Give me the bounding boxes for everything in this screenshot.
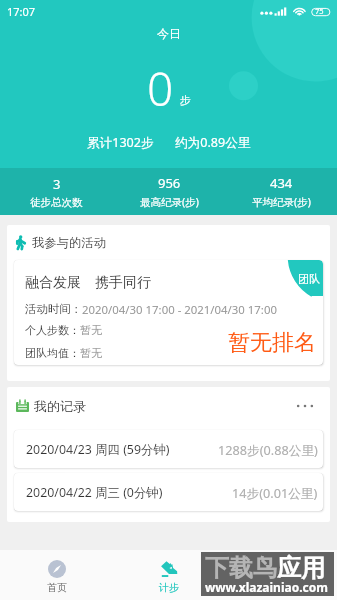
staticText: 团队: [298, 272, 320, 286]
staticText: 2020/04/30 17:00 - 2021/04/30 17:00: [82, 302, 277, 318]
staticText: 我参与的活动: [32, 235, 106, 250]
staticText: 步: [180, 93, 191, 107]
staticText: 融合发展 携手同行: [25, 272, 151, 291]
staticText: 团队均值：: [25, 346, 80, 360]
staticText: 434: [270, 174, 293, 192]
button[interactable]: 2020/04/23 周四 (59分钟): [14, 430, 323, 468]
staticText: 个人步数：: [25, 323, 80, 337]
staticText: 1288步(0.88公里): [218, 441, 318, 458]
staticText: 75: [315, 6, 324, 16]
staticText: 2020/04/22 周三 (0分钟): [26, 484, 163, 501]
button[interactable]: 首页: [0, 550, 113, 600]
button[interactable]: More options: [294, 395, 316, 417]
staticText: 14步(0.01公里): [232, 484, 318, 501]
button[interactable]: 计步: [113, 550, 225, 600]
staticText: 我的: [271, 581, 291, 594]
staticText: 我的记录: [34, 398, 86, 414]
button[interactable]: 融合发展 携手同行: [14, 260, 323, 365]
staticText: 暂无排名: [228, 329, 316, 357]
button[interactable]: 2020/04/22 周三 (0分钟): [14, 473, 323, 511]
staticText: 2020/04/23 周四 (59分钟): [26, 441, 170, 458]
staticText: 活动时间：: [25, 302, 82, 316]
staticText: 平均纪录(步): [252, 195, 311, 209]
staticText: www.xlazainiao.com: [205, 579, 328, 595]
staticText: 暂无: [80, 346, 102, 360]
button[interactable]: 我的: [225, 550, 337, 600]
staticText: 今日: [157, 26, 181, 41]
staticText: 徒步总次数: [30, 196, 83, 209]
staticText: 累计1302步: [87, 134, 154, 151]
staticText: 下载鸟: [205, 553, 277, 583]
staticText: 计步: [159, 581, 179, 594]
staticText: 约为0.89公里: [175, 134, 251, 151]
staticText: 暂无: [80, 323, 102, 337]
staticText: 最高纪录(步): [140, 195, 199, 209]
staticText: 首页: [47, 581, 67, 594]
staticText: 应用: [277, 553, 325, 583]
staticText: 17:07: [7, 4, 36, 19]
staticText: 956: [158, 174, 181, 192]
staticText: 0: [147, 57, 174, 120]
staticText: 3: [53, 175, 61, 193]
